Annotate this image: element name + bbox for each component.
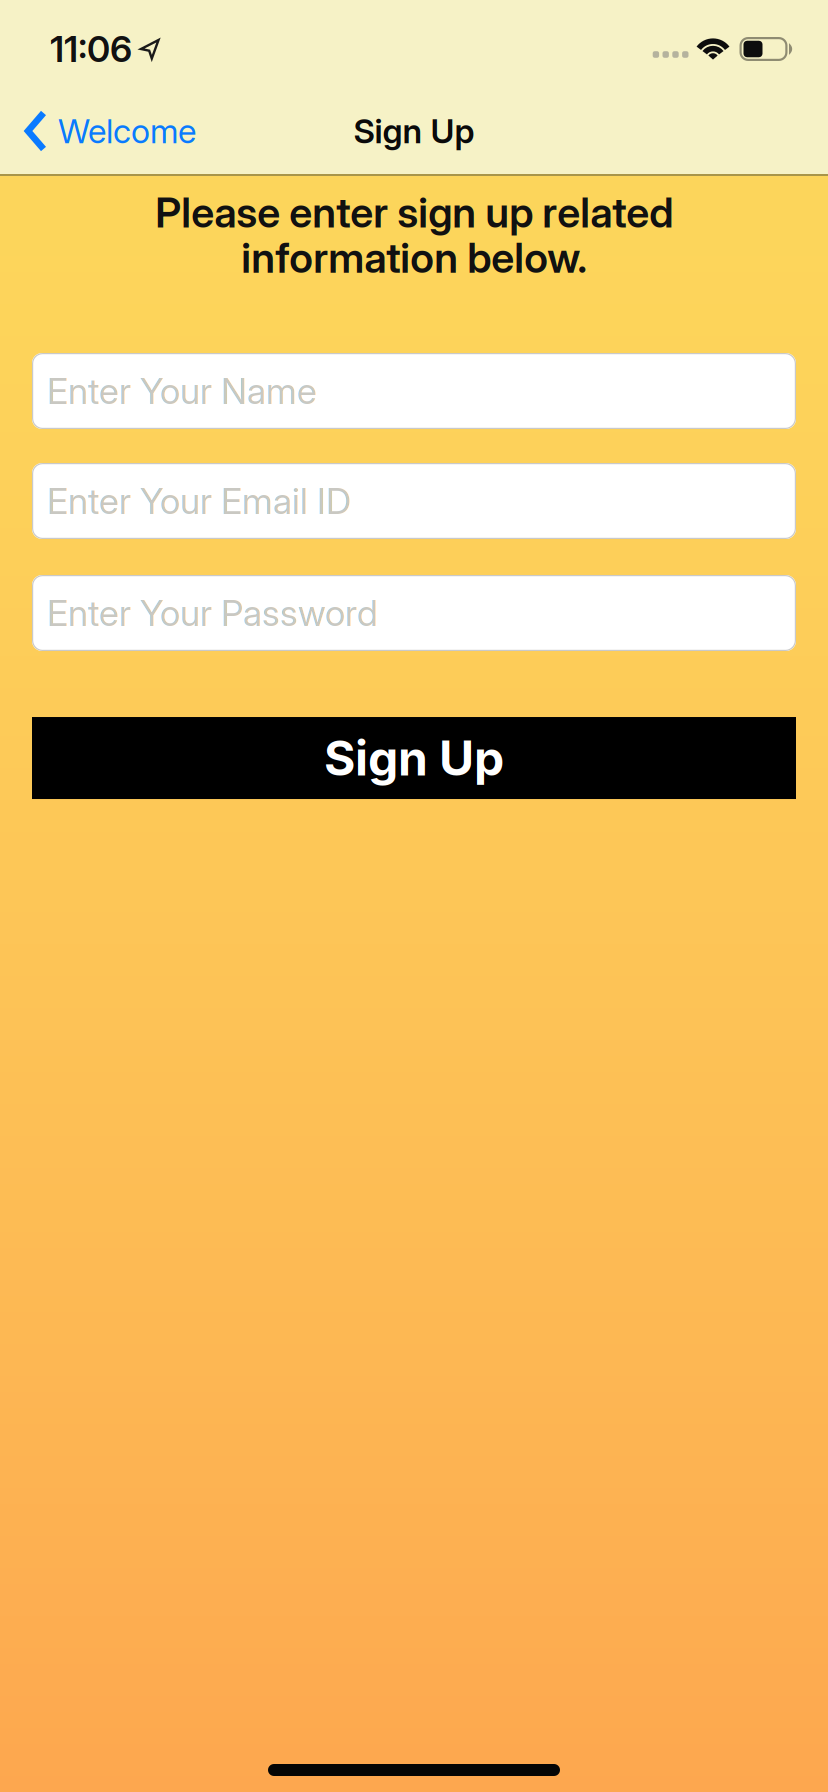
button[interactable]: Welcome	[0, 110, 196, 152]
staticText: 11:06	[50, 28, 132, 70]
staticText: Enter Your Name	[47, 370, 317, 412]
textField[interactable]: Enter Your Name	[47, 370, 796, 412]
textField[interactable]: Enter Your Email ID	[47, 480, 796, 522]
staticText: Sign Up	[353, 111, 474, 151]
staticText: Please enter sign up related information…	[155, 188, 673, 282]
button[interactable]: Sign Up	[32, 717, 796, 799]
staticText: Welcome	[58, 111, 196, 151]
textField[interactable]: Enter Your Password	[47, 592, 796, 634]
staticText: Enter Your Email ID	[47, 480, 351, 522]
staticText: Enter Your Password	[47, 592, 378, 634]
staticText: Sign Up	[324, 730, 504, 786]
